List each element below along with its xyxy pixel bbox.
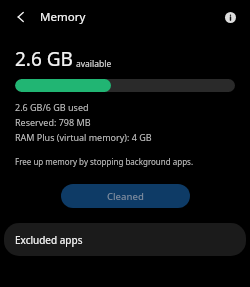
staticText: 2.6 GB/6 GB used [15, 101, 89, 113]
staticText: Excluded apps [15, 233, 83, 247]
staticText: Cleaned [107, 190, 144, 203]
staticText: RAM Plus (virtual memory): 4 GB [15, 131, 152, 143]
button[interactable]: Excluded apps [4, 223, 246, 256]
button[interactable]: Information [218, 5, 242, 29]
staticText: Memory [40, 9, 86, 25]
button[interactable]: Cleaned [61, 184, 190, 208]
staticText: Reserved: 798 MB [15, 116, 91, 128]
staticText: 2.6 GB [15, 46, 73, 72]
button[interactable]: Back [8, 4, 34, 30]
staticText: available [76, 58, 112, 70]
staticText: Free up memory by stopping background ap… [15, 156, 194, 167]
